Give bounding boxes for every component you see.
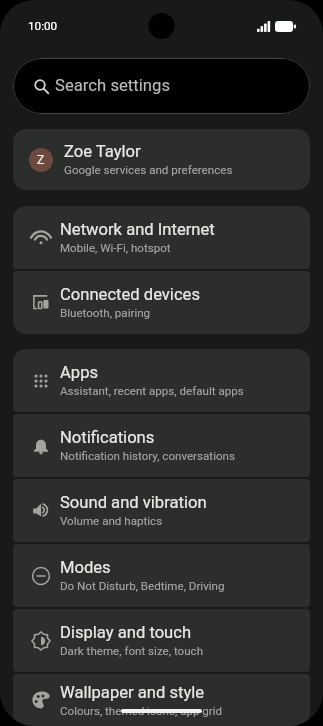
staticText: Z <box>37 153 45 167</box>
staticText: Bluetooth, pairing <box>60 306 151 320</box>
button[interactable]: Network and Internet <box>13 206 310 269</box>
button[interactable]: Modes <box>13 544 310 607</box>
other: Home <box>121 709 202 713</box>
button[interactable]: Connected devices <box>13 271 310 334</box>
staticText: Sound and vibration <box>60 493 207 512</box>
button[interactable]: Search settings <box>13 58 310 114</box>
staticText: Do Not Disturb, Bedtime, Driving <box>60 579 225 593</box>
staticText: 10:00 <box>28 19 58 33</box>
staticText: Modes <box>60 558 111 577</box>
staticText: Network and Internet <box>60 220 215 239</box>
button[interactable]: Notifications <box>13 414 310 477</box>
button[interactable]: Sound and vibration <box>13 479 310 542</box>
button[interactable]: Display and touch <box>13 609 310 672</box>
staticText: Notifications <box>60 428 155 447</box>
button[interactable]: Wallpaper and style <box>13 674 310 726</box>
staticText: Dark theme, font size, touch <box>60 644 204 658</box>
staticText: Colours, themed icons, app grid <box>60 704 223 718</box>
staticText: Search settings <box>55 76 171 96</box>
staticText: Connected devices <box>60 285 200 304</box>
staticText: Display and touch <box>60 623 192 642</box>
button[interactable]: Apps <box>13 349 310 412</box>
button[interactable]: Z <box>13 129 310 190</box>
staticText: Notification history, conversations <box>60 449 235 463</box>
staticText: Wallpaper and style <box>60 683 205 702</box>
staticText: Google services and preferences <box>64 163 233 177</box>
staticText: Apps <box>60 363 99 382</box>
staticText: Assistant, recent apps, default apps <box>60 384 244 398</box>
staticText: Zoe Taylor <box>64 142 141 161</box>
staticText: Volume and haptics <box>60 514 163 528</box>
staticText: Mobile, Wi-Fi, hotspot <box>60 241 171 255</box>
